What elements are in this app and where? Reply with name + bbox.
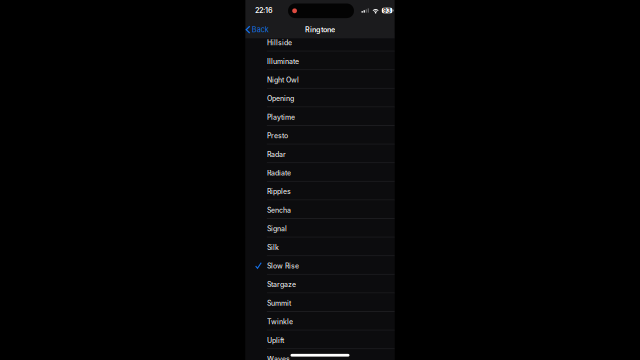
staticText: Ripples — [267, 187, 291, 196]
button[interactable]: Sencha — [245, 200, 394, 219]
staticText: Opening — [267, 94, 294, 103]
staticText: 93 — [383, 7, 391, 14]
button[interactable]: Twinkle — [245, 312, 394, 331]
staticText: Stargaze — [267, 280, 296, 289]
button[interactable]: Presto — [245, 126, 394, 145]
staticText: Silk — [267, 243, 279, 252]
staticText: Twinkle — [267, 318, 293, 326]
button[interactable]: Summit — [245, 293, 394, 312]
button[interactable]: Uplift — [245, 331, 394, 349]
button[interactable]: Night Owl — [245, 70, 394, 89]
staticText: Uplift — [267, 336, 284, 345]
button[interactable]: Signal — [245, 219, 394, 238]
button[interactable]: Waves — [245, 349, 394, 360]
button[interactable]: Hillside — [245, 33, 394, 52]
button[interactable]: Playtime — [245, 107, 394, 126]
button[interactable]: Radar — [245, 145, 394, 163]
staticText: Hillside — [267, 39, 292, 47]
button[interactable]: Ripples — [245, 182, 394, 200]
button[interactable]: Opening — [245, 89, 394, 107]
button[interactable]: Radiate — [245, 163, 394, 182]
staticText: Radiate — [267, 169, 291, 177]
staticText: Slow Rise — [267, 262, 299, 270]
button[interactable]: Stargaze — [245, 275, 394, 293]
staticText: Illuminate — [267, 57, 299, 66]
staticText: Summit — [267, 299, 291, 307]
button[interactable]: Back — [245, 23, 272, 37]
button[interactable]: Illuminate — [245, 52, 394, 70]
button[interactable]: Slow Rise — [245, 256, 394, 275]
staticText: Radar — [267, 150, 286, 159]
button[interactable]: Silk — [245, 238, 394, 256]
staticText: Playtime — [267, 113, 295, 121]
staticText: Signal — [267, 225, 287, 233]
staticText: 22:16 — [255, 6, 273, 15]
staticText: Presto — [267, 132, 288, 140]
staticText: Sencha — [267, 206, 291, 214]
staticText: Ringtone — [305, 25, 335, 34]
staticText: Night Owl — [267, 76, 299, 84]
staticText: Waves — [267, 355, 290, 360]
staticText: Back — [252, 25, 269, 34]
